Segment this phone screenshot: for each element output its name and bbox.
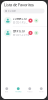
staticText: Pedidos: [27, 91, 33, 93]
staticText: Lista de Favoritos: [4, 2, 34, 7]
button[interactable]: SERVICIO: [1, 27, 47, 39]
staticText: COMERCIO: [13, 17, 27, 21]
button[interactable]: Perfil: [35, 84, 47, 95]
button[interactable]: Disponible: [34, 18, 38, 23]
button[interactable]: Favorito: [28, 31, 33, 35]
button[interactable]: COMERCIO: [1, 15, 47, 27]
staticText: SERVICIO: [13, 29, 25, 33]
button[interactable]: Pedidos: [24, 84, 35, 95]
button[interactable]: Favorito: [28, 18, 33, 23]
staticText: Buscar: [8, 9, 16, 13]
staticText: Perfil: [39, 91, 43, 93]
staticText: Sector-Rubro: [13, 21, 28, 24]
staticText: Inicio: [5, 91, 8, 93]
staticText: Sector-Zona: [13, 33, 28, 36]
button[interactable]: Disponible: [34, 31, 38, 35]
button[interactable]: Inicio: [1, 84, 12, 95]
staticText: Favoritos: [15, 91, 22, 93]
button[interactable]: Favoritos: [12, 84, 24, 95]
